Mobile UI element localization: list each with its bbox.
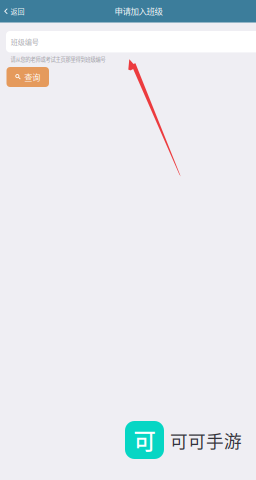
staticText: 查询 <box>24 71 40 83</box>
staticText: 可 <box>133 424 155 456</box>
staticText: 请从您的老师或考试主页那里得到班级编号 <box>10 55 105 63</box>
button[interactable]: 查询 <box>6 67 49 87</box>
button[interactable]: 返回 <box>0 0 31 22</box>
staticText: 申请加入班级 <box>114 5 162 17</box>
staticText: 可可手游 <box>170 427 242 453</box>
staticText: 班级编号 <box>11 36 39 47</box>
button[interactable]: 班级编号 <box>6 31 256 52</box>
staticText: 返回 <box>10 6 24 16</box>
